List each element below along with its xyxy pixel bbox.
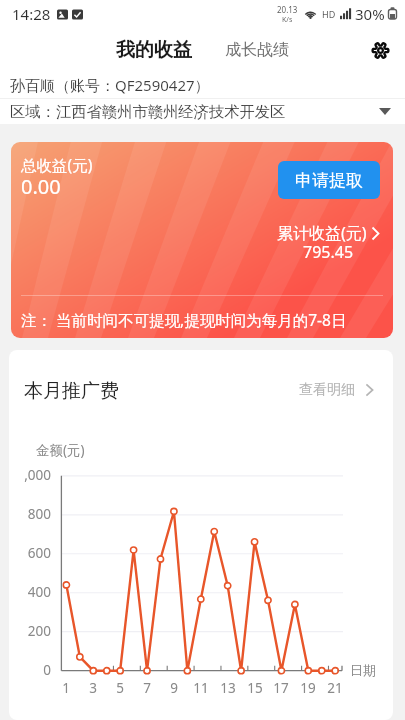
staticText: ,000 (24, 466, 51, 484)
staticText: 14:28 (12, 4, 51, 24)
staticText: 金额(元) (36, 441, 85, 459)
staticText: K/s (282, 15, 293, 25)
staticText: 600 (27, 544, 51, 562)
staticText: 成长战绩 (225, 40, 289, 60)
button[interactable]: 查看明细 (295, 378, 378, 402)
staticText: HD (322, 8, 336, 20)
button[interactable]: 申请提取 (278, 161, 380, 199)
staticText: 400 (27, 583, 51, 601)
button[interactable]: Settings (363, 33, 397, 67)
staticText: 795.45 (303, 241, 354, 263)
staticText: 申请提取 (295, 170, 363, 191)
staticText: 21 (327, 679, 343, 697)
button[interactable]: 区域：江西省赣州市赣州经济技术开发区 (0, 99, 405, 124)
staticText: 累计收益(元) (277, 222, 367, 244)
staticText: 孙百顺（账号：QF2590427） (10, 75, 210, 95)
staticText: 日期 (350, 662, 376, 678)
staticText: 查看明细 (299, 381, 355, 399)
button[interactable]: 我的收益 (113, 33, 195, 67)
staticText: 11 (193, 679, 209, 697)
staticText: 13 (220, 679, 236, 697)
staticText: 本月推广费 (24, 379, 119, 403)
staticText: 5 (116, 679, 124, 697)
staticText: 0.00 (21, 173, 61, 200)
staticText: 注： 当前时间不可提现,提现时间为每月的7-8日 (21, 309, 347, 330)
staticText: 3 (89, 679, 97, 697)
button[interactable]: 累计收益(元) (277, 222, 380, 266)
staticText: 800 (27, 505, 51, 523)
staticText: 15 (247, 679, 263, 697)
staticText: 30% (355, 4, 385, 24)
staticText: 17 (273, 679, 289, 697)
button[interactable]: 本月推广费 (24, 379, 119, 403)
staticText: 我的收益 (116, 38, 192, 62)
staticText: 19 (300, 679, 316, 697)
staticText: 9 (170, 679, 178, 697)
staticText: 0 (43, 661, 51, 679)
staticText: 20.13 (277, 4, 298, 15)
staticText: 200 (27, 622, 51, 640)
staticText: 区域：江西省赣州市赣州经济技术开发区 (10, 102, 286, 121)
button[interactable]: 成长战绩 (222, 35, 292, 65)
staticText: 1 (62, 679, 70, 697)
staticText: 总收益(元) (21, 154, 93, 175)
staticText: 7 (143, 679, 151, 697)
